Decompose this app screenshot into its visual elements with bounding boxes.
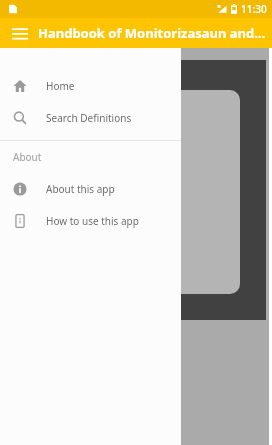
button[interactable]: About this app bbox=[0, 173, 181, 205]
button[interactable]: Open navigation menu bbox=[7, 20, 33, 46]
button[interactable]: How to use this app bbox=[0, 205, 181, 237]
staticText: Ministério bbox=[18, 174, 85, 192]
staticText: da Saúde bbox=[18, 192, 77, 210]
staticText: About bbox=[13, 150, 42, 164]
staticText: Home bbox=[46, 79, 75, 93]
button[interactable]: Search Definitions bbox=[0, 102, 181, 134]
button[interactable]: Home bbox=[0, 70, 181, 102]
staticText: Handbook of Monitorizasaun and Av... bbox=[38, 24, 268, 42]
staticText: Search Definitions bbox=[46, 111, 132, 125]
staticText: About this app bbox=[46, 182, 115, 196]
staticText: How to use this app bbox=[46, 214, 139, 228]
staticText: 11:30 bbox=[241, 2, 267, 16]
